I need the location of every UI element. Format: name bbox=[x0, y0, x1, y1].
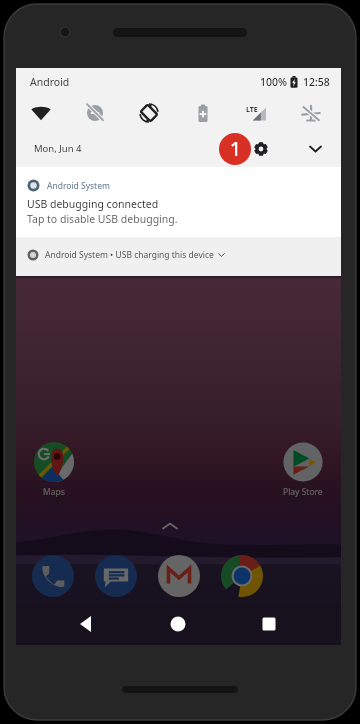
button[interactable]: Chrome bbox=[221, 555, 263, 597]
button[interactable]: Settings bbox=[250, 138, 272, 160]
button[interactable]: Wi-Fi bbox=[25, 97, 57, 129]
button[interactable]: Do not disturb bbox=[79, 97, 111, 129]
button[interactable]: Back bbox=[68, 606, 104, 642]
staticText: Mon, Jun 4 bbox=[34, 142, 82, 155]
button[interactable]: Android System bbox=[16, 167, 341, 237]
button[interactable]: 1 bbox=[219, 133, 251, 165]
button[interactable]: Maps bbox=[24, 442, 84, 498]
staticText: 12:58 bbox=[303, 75, 330, 89]
staticText: 100% bbox=[260, 75, 287, 89]
button[interactable]: Phone bbox=[32, 555, 74, 597]
staticText: Android System bbox=[47, 180, 110, 192]
staticText: Play Store bbox=[283, 486, 323, 498]
button[interactable]: Home bbox=[160, 606, 196, 642]
button[interactable]: Mobile data bbox=[241, 97, 273, 129]
staticText: LTE bbox=[246, 105, 258, 115]
button[interactable]: Recents bbox=[251, 606, 287, 642]
button[interactable]: Airplane mode bbox=[295, 97, 327, 129]
button[interactable]: Play Store bbox=[273, 442, 333, 498]
staticText: 1 bbox=[230, 136, 241, 162]
button[interactable]: Messages bbox=[95, 555, 137, 597]
staticText: Maps bbox=[43, 486, 65, 498]
other: All apps bbox=[162, 522, 178, 530]
button[interactable]: Expand bbox=[303, 137, 327, 161]
button[interactable]: Gmail bbox=[158, 555, 200, 597]
button[interactable]: Battery saver bbox=[187, 97, 219, 129]
staticText: USB debugging connected bbox=[27, 197, 159, 211]
button[interactable]: Auto rotate bbox=[133, 97, 165, 129]
button[interactable]: Android System • USB charging this devic… bbox=[16, 237, 341, 276]
staticText: Android bbox=[30, 75, 70, 89]
staticText: Android System • USB charging this devic… bbox=[45, 249, 214, 261]
staticText: Tap to disable USB debugging. bbox=[27, 212, 178, 226]
